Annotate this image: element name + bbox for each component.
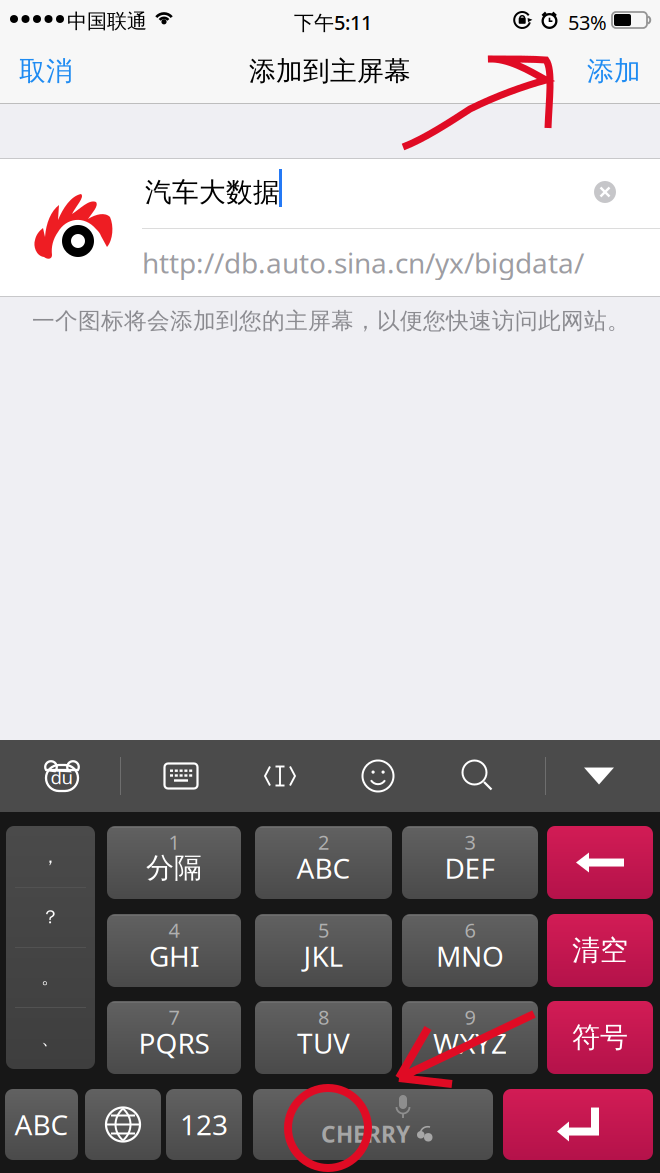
staticText: 53% bbox=[568, 9, 607, 36]
button[interactable]: Space bbox=[253, 1089, 493, 1160]
staticText: PQRS bbox=[138, 1024, 209, 1062]
staticText: JKL bbox=[303, 937, 343, 975]
staticText: http://db.auto.sina.cn/yx/bigdata/ bbox=[142, 244, 584, 281]
staticText: WXYZ bbox=[433, 1024, 507, 1062]
button[interactable]: 4 bbox=[107, 914, 241, 987]
staticText: ？ bbox=[41, 905, 60, 928]
button[interactable]: 1 bbox=[107, 826, 241, 899]
button[interactable]: 6 bbox=[402, 914, 538, 987]
button[interactable]: 7 bbox=[107, 1001, 241, 1074]
button[interactable]: Emoji bbox=[329, 740, 427, 812]
staticText: 7 bbox=[168, 1004, 179, 1030]
staticText: GHI bbox=[149, 937, 199, 975]
button[interactable]: 3 bbox=[402, 826, 538, 899]
button[interactable]: 8 bbox=[255, 1001, 392, 1074]
button[interactable]: 取消 bbox=[0, 41, 92, 101]
button[interactable]: Hide keyboard bbox=[544, 740, 654, 812]
staticText: 中国联通 bbox=[67, 9, 147, 34]
staticText: 4 bbox=[168, 917, 179, 943]
button[interactable]: Return bbox=[503, 1089, 653, 1160]
staticText: CHERRY bbox=[321, 1119, 410, 1149]
staticText: DEF bbox=[444, 849, 495, 887]
staticText: 123 bbox=[180, 1106, 228, 1143]
staticText: TUV bbox=[297, 1024, 350, 1062]
button[interactable]: Next keyboard bbox=[85, 1089, 161, 1160]
button[interactable]: ABC bbox=[5, 1089, 78, 1160]
button[interactable]: 2 bbox=[255, 826, 392, 899]
staticText: 添加到主屏幕 bbox=[249, 55, 411, 87]
button[interactable]: 清空 bbox=[547, 914, 653, 987]
button[interactable]: 9 bbox=[402, 1001, 538, 1074]
button[interactable]: Punctuation bbox=[6, 826, 95, 1069]
staticText: 、 bbox=[41, 1026, 60, 1049]
staticText: 。 bbox=[41, 965, 60, 988]
staticText: 2 bbox=[318, 829, 329, 855]
staticText: ， bbox=[41, 845, 60, 868]
button[interactable]: Clear text bbox=[580, 167, 630, 217]
button[interactable]: Switch keyboard layout bbox=[132, 740, 230, 812]
staticText: du bbox=[50, 765, 73, 789]
staticText: 分隔 bbox=[146, 851, 202, 885]
button[interactable]: 添加 bbox=[568, 41, 660, 101]
button[interactable]: Search bbox=[429, 740, 527, 812]
button[interactable]: 符号 bbox=[547, 1001, 653, 1074]
staticText: 1 bbox=[168, 829, 179, 855]
staticText: 取消 bbox=[19, 55, 73, 87]
staticText: 添加 bbox=[587, 55, 641, 87]
staticText: ABC bbox=[296, 849, 350, 887]
staticText: 清空 bbox=[572, 933, 628, 968]
button[interactable]: Move cursor bbox=[231, 740, 329, 812]
staticText: 6 bbox=[464, 917, 475, 943]
staticText: MNO bbox=[436, 937, 504, 975]
staticText: 一个图标将会添加到您的主屏幕，以便您快速访问此网站。 bbox=[32, 307, 630, 335]
staticText: 下午5:11 bbox=[294, 9, 372, 36]
staticText: 9 bbox=[464, 1004, 475, 1030]
button[interactable]: 123 bbox=[166, 1089, 242, 1160]
staticText: 8 bbox=[318, 1004, 329, 1030]
staticText: ABC bbox=[14, 1106, 68, 1143]
button[interactable]: 5 bbox=[255, 914, 392, 987]
staticText: 符号 bbox=[572, 1020, 628, 1055]
staticText: 5 bbox=[318, 917, 329, 943]
staticText: 汽车大数据 bbox=[145, 176, 280, 209]
staticText: 3 bbox=[464, 829, 475, 855]
button[interactable]: Backspace bbox=[547, 826, 653, 899]
button[interactable]: Baidu input method bbox=[7, 740, 117, 812]
